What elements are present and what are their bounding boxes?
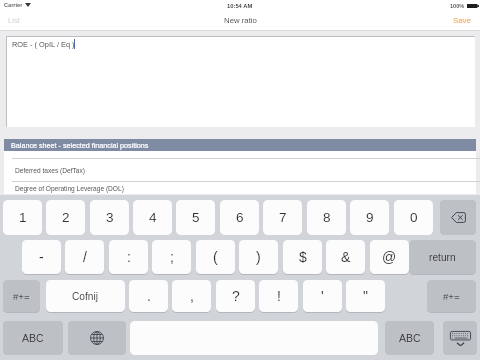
staticText: Balance sheet - selected financial posit… bbox=[11, 141, 149, 149]
staticText: Carrier bbox=[4, 2, 23, 8]
staticText: 0 bbox=[410, 210, 418, 225]
staticText: 4 bbox=[149, 210, 157, 225]
button[interactable]: & bbox=[326, 240, 365, 274]
staticText: : bbox=[127, 249, 131, 265]
button[interactable]: 9 bbox=[350, 200, 389, 235]
staticText: " bbox=[363, 288, 368, 304]
button[interactable]: List bbox=[4, 15, 24, 25]
button[interactable]: ABC bbox=[3, 321, 63, 355]
button[interactable]: ? bbox=[216, 280, 255, 312]
staticText: Deferred taxes (DefTax) bbox=[15, 167, 85, 174]
button[interactable]: Backspace bbox=[440, 200, 476, 235]
button[interactable]: ' bbox=[303, 280, 342, 312]
button[interactable]: #+= bbox=[427, 280, 476, 312]
staticText: ABC bbox=[399, 332, 421, 344]
staticText: ! bbox=[277, 288, 281, 304]
button[interactable]: : bbox=[109, 240, 148, 274]
button[interactable]: Hide keyboard bbox=[443, 321, 477, 355]
button[interactable]: $ bbox=[283, 240, 322, 274]
staticText: #+= bbox=[13, 291, 30, 302]
staticText: ) bbox=[256, 249, 261, 265]
staticText: & bbox=[341, 249, 351, 265]
button[interactable]: Deferred taxes (DefTax) bbox=[4, 158, 476, 181]
staticText: return bbox=[429, 252, 456, 263]
button[interactable]: return bbox=[409, 240, 476, 274]
button[interactable]: ROE - ( OpIL / Eq ) bbox=[7, 37, 475, 127]
button[interactable]: . bbox=[129, 280, 168, 312]
staticText: 8 bbox=[323, 210, 331, 225]
staticText: 1 bbox=[19, 210, 27, 225]
button[interactable]: " bbox=[346, 280, 385, 312]
button[interactable]: ) bbox=[239, 240, 278, 274]
button[interactable]: ; bbox=[152, 240, 191, 274]
button[interactable]: Balance sheet - selected financial posit… bbox=[4, 139, 476, 151]
button[interactable]: ( bbox=[196, 240, 235, 274]
button[interactable]: Save bbox=[449, 15, 475, 26]
button[interactable]: 6 bbox=[220, 200, 259, 235]
staticText: 5 bbox=[192, 210, 200, 225]
button[interactable]: 5 bbox=[176, 200, 215, 235]
button[interactable]: 7 bbox=[263, 200, 302, 235]
staticText: New ratio bbox=[224, 16, 257, 25]
button[interactable]: , bbox=[172, 280, 211, 312]
button[interactable]: Cofnij bbox=[46, 280, 125, 312]
staticText: List bbox=[8, 16, 20, 24]
button[interactable]: ! bbox=[259, 280, 298, 312]
staticText: 100% bbox=[450, 3, 465, 9]
staticText: ; bbox=[170, 249, 174, 265]
button[interactable]: 1 bbox=[3, 200, 42, 235]
button[interactable]: 0 bbox=[394, 200, 433, 235]
staticText: @ bbox=[382, 249, 397, 265]
staticText: ROE - ( OpIL / Eq ) bbox=[12, 40, 75, 48]
staticText: . bbox=[147, 288, 151, 304]
staticText: ( bbox=[213, 249, 218, 265]
staticText: - bbox=[39, 249, 44, 265]
button[interactable]: 8 bbox=[307, 200, 346, 235]
button[interactable]: @ bbox=[370, 240, 409, 274]
button[interactable]: 2 bbox=[46, 200, 85, 235]
button[interactable]: - bbox=[22, 240, 61, 274]
button[interactable]: Change keyboard bbox=[68, 321, 126, 355]
staticText: , bbox=[190, 288, 194, 304]
staticText: ? bbox=[232, 288, 240, 304]
staticText: ' bbox=[321, 288, 324, 304]
staticText: 7 bbox=[279, 210, 287, 225]
staticText: 2 bbox=[62, 210, 70, 225]
button[interactable]: 3 bbox=[90, 200, 129, 235]
staticText: $ bbox=[299, 249, 307, 265]
button[interactable]: ABC bbox=[385, 321, 434, 355]
staticText: 3 bbox=[106, 210, 114, 225]
button[interactable]: / bbox=[65, 240, 104, 274]
staticText: Cofnij bbox=[72, 291, 99, 302]
staticText: 9 bbox=[366, 210, 374, 225]
staticText: #+= bbox=[443, 291, 460, 302]
staticText: Degree of Operating Leverage (DOL) bbox=[15, 185, 124, 192]
button[interactable]: #+= bbox=[3, 280, 40, 312]
staticText: 10:54 AM bbox=[227, 3, 253, 9]
staticText: 6 bbox=[236, 210, 244, 225]
button[interactable]: 4 bbox=[133, 200, 172, 235]
staticText: ABC bbox=[22, 332, 44, 344]
button[interactable]: Degree of Operating Leverage (DOL) bbox=[4, 181, 476, 194]
staticText: / bbox=[83, 249, 87, 265]
staticText: Save bbox=[453, 16, 471, 25]
